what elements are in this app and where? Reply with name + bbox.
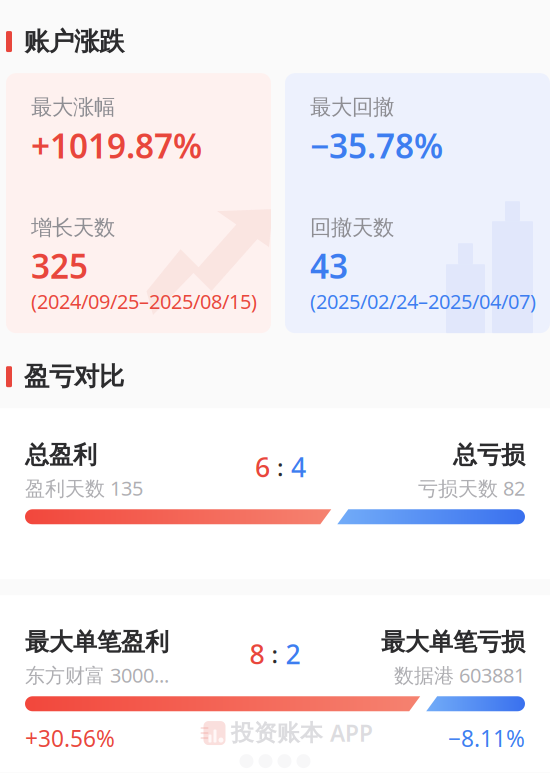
staticText: 总盈利 [25,440,97,470]
staticText: 最大回撤 [310,94,394,120]
staticText: 回撤天数 [310,215,394,241]
staticText: +1019.87% [31,123,202,168]
staticText: APP [330,718,373,748]
staticText: (2024/09/25–2025/08/15) [31,288,257,315]
staticText: +30.56% [25,723,115,753]
staticText: 账户涨跌 [24,26,124,57]
staticText: 增长天数 [31,215,115,241]
staticText: 43 [310,244,348,288]
staticText: 最大涨幅 [31,94,115,120]
staticText: 6 [255,449,270,485]
staticText: −8.11% [448,723,525,753]
staticText: 最大单笔盈利 [25,627,169,657]
staticText: 总亏损 [453,440,525,470]
staticText: 盈亏对比 [24,361,124,392]
staticText: 盈利天数 135 [25,475,143,501]
staticText: 2 [285,636,300,672]
staticText: 数据港 603881 [394,662,525,688]
staticText: 亏损天数 82 [418,475,525,501]
staticText: : [271,638,278,670]
staticText: 325 [31,244,88,288]
staticText: 投资账本 [231,719,323,747]
staticText: 东方财富 3000... [25,662,169,688]
staticText: (2025/02/24–2025/04/07) [310,288,536,315]
staticText: −35.78% [310,123,443,168]
staticText: 8 [249,636,264,672]
staticText: 最大单笔亏损 [381,627,525,657]
staticText: : [277,451,284,483]
staticText: 4 [291,449,306,485]
